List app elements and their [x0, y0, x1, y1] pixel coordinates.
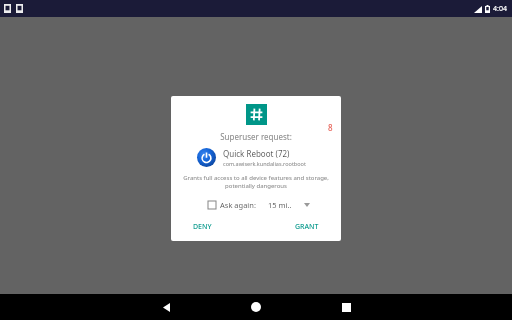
button[interactable]: Back: [121, 294, 211, 320]
staticText: Ask again:: [220, 200, 256, 210]
staticText: GRANT: [295, 222, 319, 232]
staticText: 15 mi..: [268, 200, 292, 210]
button[interactable]: Recent apps: [301, 294, 391, 320]
button[interactable]: DENY: [185, 219, 220, 235]
staticText: 4:04: [493, 4, 507, 14]
staticText: com.awiserk.kundalias.rootboot: [223, 160, 306, 167]
button[interactable]: Ask again:: [206, 198, 258, 212]
staticText: DENY: [193, 222, 212, 232]
staticText: Grants full access to all device feature…: [183, 174, 329, 190]
button[interactable]: Home: [211, 294, 301, 320]
staticText: Quick Reboot (72): [223, 148, 290, 159]
button[interactable]: 15 mi..: [266, 198, 312, 212]
staticText: 8: [328, 122, 333, 133]
staticText: Superuser request:: [220, 131, 292, 142]
button[interactable]: GRANT: [287, 219, 327, 235]
other: Open duration dropdown: [304, 203, 310, 207]
